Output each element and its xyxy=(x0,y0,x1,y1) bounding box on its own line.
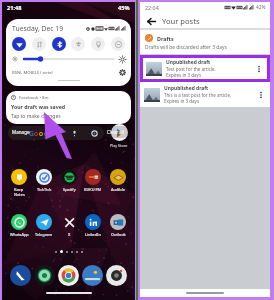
button[interactable]: WhatsApp xyxy=(7,214,31,237)
staticText: Test post for the article. xyxy=(166,66,216,72)
staticText: Your posts xyxy=(162,16,200,26)
staticText: Unpublished draft xyxy=(164,85,209,92)
button[interactable]: More options xyxy=(255,89,266,100)
staticText: Manage xyxy=(12,129,30,135)
button[interactable]: App xyxy=(58,265,79,286)
button[interactable]: Unpublished draft xyxy=(140,82,270,107)
staticText: KUKU FM xyxy=(84,187,102,192)
button[interactable]: Search xyxy=(8,126,104,140)
staticText: 42% xyxy=(256,4,266,11)
button[interactable]: Play Store xyxy=(111,124,128,141)
button[interactable]: Back xyxy=(145,15,157,27)
staticText: Your draft was saved xyxy=(11,103,66,110)
staticText: Unpublished draft xyxy=(166,59,211,66)
staticText: 21:48 xyxy=(7,4,22,12)
staticText: Clear all xyxy=(107,129,125,135)
button[interactable]: Quick setting xyxy=(32,37,46,51)
staticText: TickTick xyxy=(37,187,52,192)
button[interactable]: Unpublished draft xyxy=(142,57,268,80)
staticText: Tuesday, Dec 19 xyxy=(12,24,64,33)
staticText: LinkedIn xyxy=(85,232,101,237)
staticText: Notes xyxy=(14,192,25,197)
staticText: Tap to make changes xyxy=(11,113,61,120)
button[interactable]: Quick setting xyxy=(111,37,125,51)
staticText: WhatsApp xyxy=(10,232,29,237)
staticText: Play Store xyxy=(110,143,128,148)
button[interactable]: Quick setting xyxy=(71,37,85,51)
staticText: l xyxy=(49,129,51,138)
staticText: This is a test post for the article. xyxy=(164,92,232,98)
button[interactable]: App xyxy=(34,265,55,286)
staticText: Telegram xyxy=(35,232,53,237)
staticText: Facebook • 8m xyxy=(19,94,49,100)
staticText: G xyxy=(29,129,34,138)
staticText: Drafts will be discarded after 3 days xyxy=(145,44,227,51)
staticText: 22:04 xyxy=(145,4,159,11)
button[interactable]: KUKU FM xyxy=(81,169,105,192)
staticText: o xyxy=(34,129,39,138)
button[interactable]: Spotify xyxy=(57,169,81,192)
staticText: e xyxy=(51,129,55,138)
staticText: 45% xyxy=(118,4,130,12)
button[interactable]: LinkedIn xyxy=(81,214,105,237)
button[interactable]: App xyxy=(106,265,127,286)
button[interactable]: TickTick xyxy=(32,169,56,192)
staticText: Drafts xyxy=(157,35,174,42)
button[interactable]: Quick setting xyxy=(12,37,26,51)
staticText: Audible xyxy=(111,187,125,192)
button[interactable]: App xyxy=(82,265,103,286)
button[interactable]: Audible xyxy=(106,169,130,192)
button[interactable]: Quick setting xyxy=(91,37,105,51)
staticText: Spotify xyxy=(63,187,76,192)
button[interactable]: Manage xyxy=(8,126,34,138)
staticText: o xyxy=(39,129,44,138)
staticText: Keep xyxy=(14,187,24,192)
button[interactable]: App xyxy=(10,265,31,286)
staticText: Expires in 3 days xyxy=(164,98,200,104)
staticText: Expires in 3 days xyxy=(166,72,202,78)
staticText: X xyxy=(68,232,71,237)
button[interactable]: Keep xyxy=(7,169,31,197)
staticText: Outlook xyxy=(111,232,126,237)
button[interactable]: Telegram xyxy=(32,214,56,237)
button[interactable]: Facebook • 8m xyxy=(6,91,131,124)
button[interactable]: X xyxy=(57,214,81,237)
staticText: BSNL MOBILE l airtel xyxy=(12,70,53,76)
button[interactable]: Outlook xyxy=(106,214,130,237)
button[interactable]: More options xyxy=(253,63,264,74)
button[interactable]: Quick setting xyxy=(52,37,66,51)
staticText: g xyxy=(44,129,49,138)
button[interactable]: Clear all xyxy=(103,126,129,138)
